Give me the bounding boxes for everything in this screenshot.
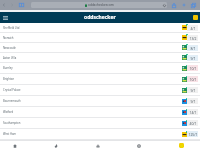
button[interactable]: Norwich	[0, 33, 200, 43]
button[interactable]: Aston Villa	[0, 53, 200, 63]
staticText: Brighton	[3, 77, 15, 81]
button[interactable]: Sheffield Utd	[0, 23, 200, 33]
button[interactable]: Football	[130, 141, 148, 150]
staticText: 9/1	[190, 56, 196, 61]
button[interactable]: Bet slip	[172, 141, 190, 150]
button[interactable]: Southampton	[0, 118, 200, 129]
button[interactable]: Menu	[0, 12, 10, 23]
button[interactable]: Tabs	[189, 0, 198, 10]
button[interactable]: oddschecker.com	[31, 2, 167, 8]
staticText: 125/1	[188, 132, 198, 137]
staticText: Burnley	[3, 66, 13, 70]
staticText: 14/1	[189, 110, 197, 115]
button[interactable]: Bournemouth	[0, 96, 200, 107]
button[interactable]: Burnley	[0, 63, 200, 74]
staticText: 8/1	[190, 46, 196, 51]
staticText: 13/2	[189, 36, 197, 41]
staticText: 10/1	[189, 77, 197, 82]
button[interactable]: Back	[0, 0, 8, 10]
staticText: Southampton	[3, 121, 21, 125]
staticText: Bournemouth	[3, 99, 21, 103]
staticText: Aston Villa	[3, 56, 17, 60]
button[interactable]: Racing	[89, 141, 107, 150]
button[interactable]: New tab	[179, 0, 188, 10]
button[interactable]: West Ham	[0, 129, 200, 140]
staticText: 10/1	[189, 66, 197, 71]
button[interactable]: Bet slip	[190, 12, 200, 23]
button[interactable]: Crystal Palace	[0, 85, 200, 96]
staticText: 40/1	[189, 121, 197, 126]
button[interactable]: Newcastle	[0, 43, 200, 53]
button[interactable]: Home	[6, 141, 24, 150]
button[interactable]: In-play	[47, 141, 65, 150]
staticText: 4/1	[190, 26, 196, 31]
button[interactable]: Bookmarks	[17, 0, 26, 10]
staticText: Watford	[3, 110, 14, 114]
staticText: oddschecker.com	[88, 3, 114, 7]
button[interactable]: Watford	[0, 107, 200, 118]
staticText: Newcastle	[3, 46, 16, 50]
staticText: West Ham	[3, 132, 16, 136]
staticText: Sheffield Utd	[3, 26, 20, 30]
staticText: Norwich	[3, 36, 14, 40]
button[interactable]: Share	[169, 0, 178, 10]
staticText: 9/1	[190, 99, 196, 104]
staticText: oddschecker	[84, 14, 116, 21]
staticText: Crystal Palace	[3, 88, 21, 92]
staticText: 9/1	[190, 88, 196, 93]
button[interactable]: Brighton	[0, 74, 200, 85]
